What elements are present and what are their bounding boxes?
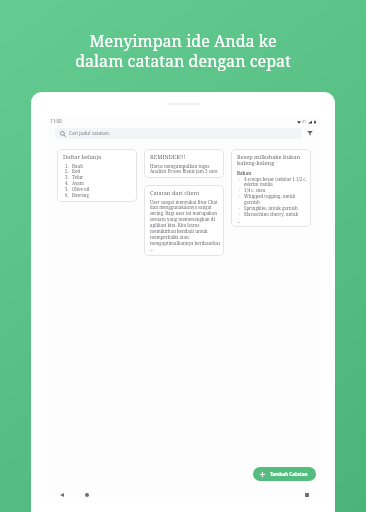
staticText: 4 scoops besar (sekitar 1 1/2 c.) eskrim… bbox=[244, 176, 307, 218]
staticText: Cari judul catatan. bbox=[69, 130, 110, 137]
staticText: Buah Roti Telur Ayam Olive oil Bawang bbox=[72, 163, 90, 199]
staticText: 1. 2. 3. 4. 5. 6. bbox=[65, 163, 69, 199]
staticText: Tambah Catatan bbox=[270, 471, 308, 477]
staticText: 11:00 bbox=[50, 118, 62, 124]
button[interactable]: Recent apps bbox=[301, 489, 313, 501]
staticText: 21 bbox=[302, 119, 307, 124]
staticText: · · · · · bbox=[239, 176, 241, 218]
button[interactable]: Back bbox=[56, 489, 68, 501]
button[interactable]: Filter bbox=[302, 125, 318, 141]
staticText: Bahan bbox=[237, 170, 252, 176]
button[interactable]: Cari judul catatan. bbox=[55, 128, 302, 139]
staticText: Resep milkshake bukan kaleng-kaleng bbox=[237, 153, 300, 167]
staticText: REMINDER!!! bbox=[150, 153, 186, 161]
staticText: ... bbox=[237, 218, 241, 224]
button[interactable]: Tambah Catatan bbox=[253, 467, 316, 481]
staticText: Daftar belanja bbox=[63, 153, 102, 161]
staticText: Catatan dari client bbox=[150, 189, 200, 197]
button[interactable]: REMINDER!!! bbox=[144, 149, 224, 178]
button[interactable]: Resep milkshake bukan kaleng-kaleng bbox=[231, 149, 311, 227]
staticText: User sangat menyukai fitur Chat dan meng… bbox=[150, 199, 220, 253]
button[interactable]: Catatan dari client bbox=[144, 185, 224, 256]
staticText: Menyimpan ide Anda ke dalam catatan deng… bbox=[75, 30, 291, 71]
staticText: Harus mengumpulkan tugas Analisis Proses… bbox=[150, 163, 218, 175]
button[interactable]: Daftar belanja bbox=[57, 149, 137, 202]
button[interactable]: Home bbox=[81, 489, 93, 501]
